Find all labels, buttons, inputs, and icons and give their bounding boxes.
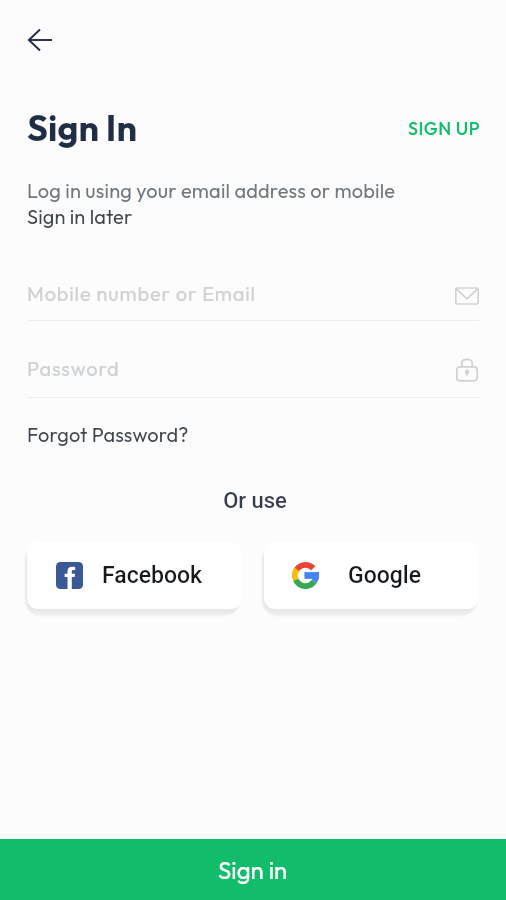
- staticText: Google: [348, 562, 421, 589]
- staticText: Password: [27, 356, 120, 381]
- staticText: Log in using your email address or mobil…: [27, 178, 396, 203]
- staticText: Or use: [4, 488, 506, 514]
- button[interactable]: Sign in later: [27, 204, 133, 229]
- button[interactable]: Mobile number or Email: [27, 275, 479, 324]
- button[interactable]: Password: [27, 350, 479, 401]
- button[interactable]: Sign in: [0, 839, 506, 900]
- staticText: Mobile number or Email: [27, 281, 256, 306]
- button[interactable]: SIGN UP: [408, 117, 481, 140]
- staticText: Sign in: [218, 855, 288, 885]
- button[interactable]: Sign In: [27, 105, 137, 150]
- staticText: Sign in later: [27, 204, 133, 229]
- button[interactable]: Google: [264, 542, 479, 609]
- staticText: SIGN UP: [408, 117, 481, 140]
- button[interactable]: Forgot Password?: [27, 422, 189, 447]
- staticText: Sign In: [27, 105, 137, 150]
- staticText: Facebook: [102, 562, 203, 589]
- button[interactable]: Facebook: [27, 542, 242, 609]
- staticText: Forgot Password?: [27, 422, 189, 447]
- button[interactable]: Back: [16, 16, 64, 64]
